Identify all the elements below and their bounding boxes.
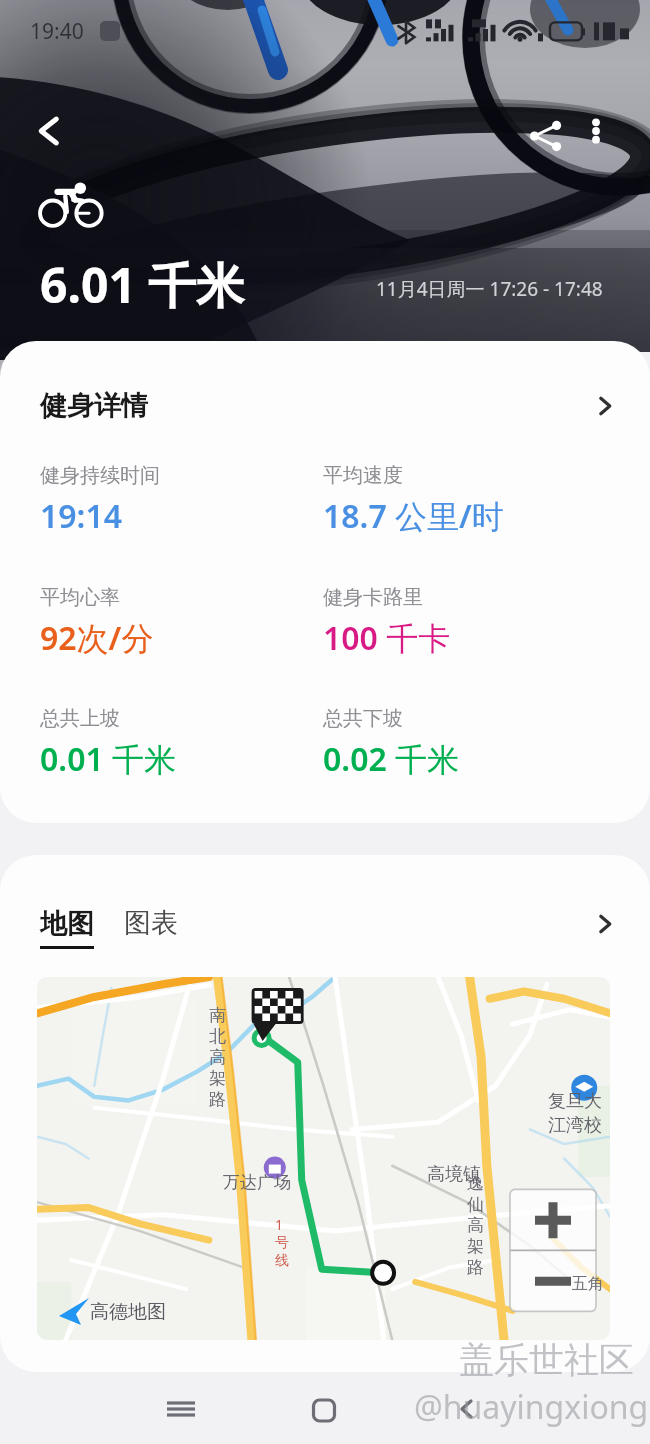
staticText: 11月4日周一 17:26 - 17:48 [376, 276, 603, 302]
staticText: 架 [467, 1236, 484, 1257]
staticText: 高 [209, 1047, 226, 1068]
staticText: 平均心率 [40, 585, 120, 610]
staticText: 健身持续时间 [40, 463, 160, 488]
staticText: 架 [209, 1068, 226, 1089]
staticText: 仙 [467, 1194, 484, 1215]
button[interactable]: More options [578, 113, 614, 149]
button[interactable]: Recents [156, 1384, 206, 1434]
staticText: 1 [275, 1215, 284, 1234]
staticText: 北 [209, 1026, 226, 1047]
staticText: 0.01 千米 [40, 737, 177, 781]
staticText: 100 千卡 [323, 616, 451, 660]
button[interactable]: 地图 [40, 907, 94, 949]
button[interactable]: 健身详情 [40, 389, 620, 423]
staticText: 总共上坡 [40, 706, 120, 731]
staticText: 线 [275, 1252, 289, 1270]
button[interactable]: 图表 [124, 911, 178, 945]
staticText: 南 [209, 1005, 226, 1026]
staticText: @huayingxiong [414, 1385, 649, 1429]
staticText: 五角 [572, 1274, 604, 1294]
button[interactable]: Home [299, 1384, 349, 1434]
staticText: 复旦大 [548, 1090, 602, 1113]
staticText: 健身详情 [40, 389, 148, 423]
staticText: 6.01 千米 [40, 252, 245, 318]
staticText: 92次/分 [40, 616, 154, 660]
staticText: 19:14 [40, 494, 123, 538]
staticText: 万达广场 [223, 1172, 291, 1193]
staticText: 健身卡路里 [323, 585, 423, 610]
staticText: 19:40 [30, 17, 84, 46]
staticText: 高 [467, 1215, 484, 1236]
staticText: 高境镇 [427, 1163, 481, 1186]
staticText: 盖乐世社区 [459, 1338, 634, 1382]
staticText: 路 [467, 1257, 484, 1278]
staticText: 18.7 公里/时 [323, 494, 504, 538]
staticText: 路 [209, 1089, 226, 1110]
staticText: 号 [275, 1234, 289, 1252]
button[interactable]: Route map [37, 977, 610, 1340]
button[interactable]: Share [523, 113, 569, 159]
staticText: 总共下坡 [323, 706, 403, 731]
staticText: 逸 [467, 1173, 484, 1194]
button[interactable]: Back [442, 1384, 492, 1434]
staticText: 平均速度 [323, 463, 403, 488]
staticText: 0.02 千米 [323, 737, 460, 781]
staticText: 高德地图 [90, 1300, 166, 1324]
button[interactable]: Open map [590, 909, 620, 939]
staticText: 江湾校 [548, 1114, 602, 1137]
button[interactable]: Back [26, 108, 72, 154]
staticText: 地图 [40, 907, 94, 941]
